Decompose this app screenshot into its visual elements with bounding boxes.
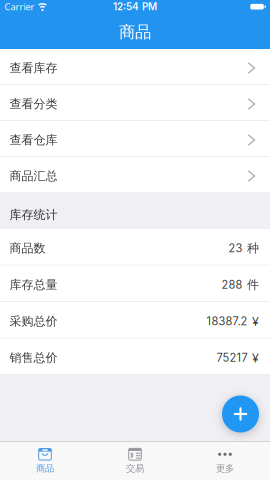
staticText: 18387.2 — [206, 315, 247, 328]
button[interactable]: 查看分类 — [0, 85, 270, 121]
button[interactable]: 商品汇总 — [0, 157, 270, 193]
staticText: 销售总价 — [9, 350, 57, 365]
staticText: 采购总价 — [9, 314, 57, 329]
staticText: 75217 — [216, 351, 247, 364]
staticText: 商品 — [36, 463, 54, 474]
staticText: 23 — [228, 242, 242, 255]
staticText: 件 — [247, 277, 259, 292]
button[interactable]: 商品 — [0, 442, 90, 480]
staticText: 商品 — [119, 22, 151, 42]
button[interactable]: 查看库存 — [0, 49, 270, 85]
staticText: 查看库存 — [9, 61, 57, 75]
staticText: 商品汇总 — [9, 169, 57, 183]
staticText: ¥ — [252, 313, 259, 329]
staticText: 种 — [247, 241, 259, 256]
staticText: ¥ — [252, 350, 259, 366]
staticText: 查看分类 — [9, 97, 57, 111]
button[interactable]: Add — [222, 395, 259, 432]
button[interactable]: 查看仓库 — [0, 121, 270, 157]
staticText: 查看仓库 — [9, 133, 57, 147]
button[interactable]: 更多 — [180, 442, 270, 480]
staticText: 库存总量 — [9, 277, 57, 292]
staticText: 交易 — [126, 463, 144, 474]
staticText: 商品数 — [9, 241, 45, 256]
button[interactable]: 交易 — [90, 442, 180, 480]
staticText: 12:54 PM — [113, 0, 157, 13]
staticText: Carrier — [4, 0, 34, 13]
staticText: 288 — [221, 278, 242, 291]
staticText: 库存统计 — [9, 207, 57, 222]
staticText: 更多 — [216, 463, 234, 474]
